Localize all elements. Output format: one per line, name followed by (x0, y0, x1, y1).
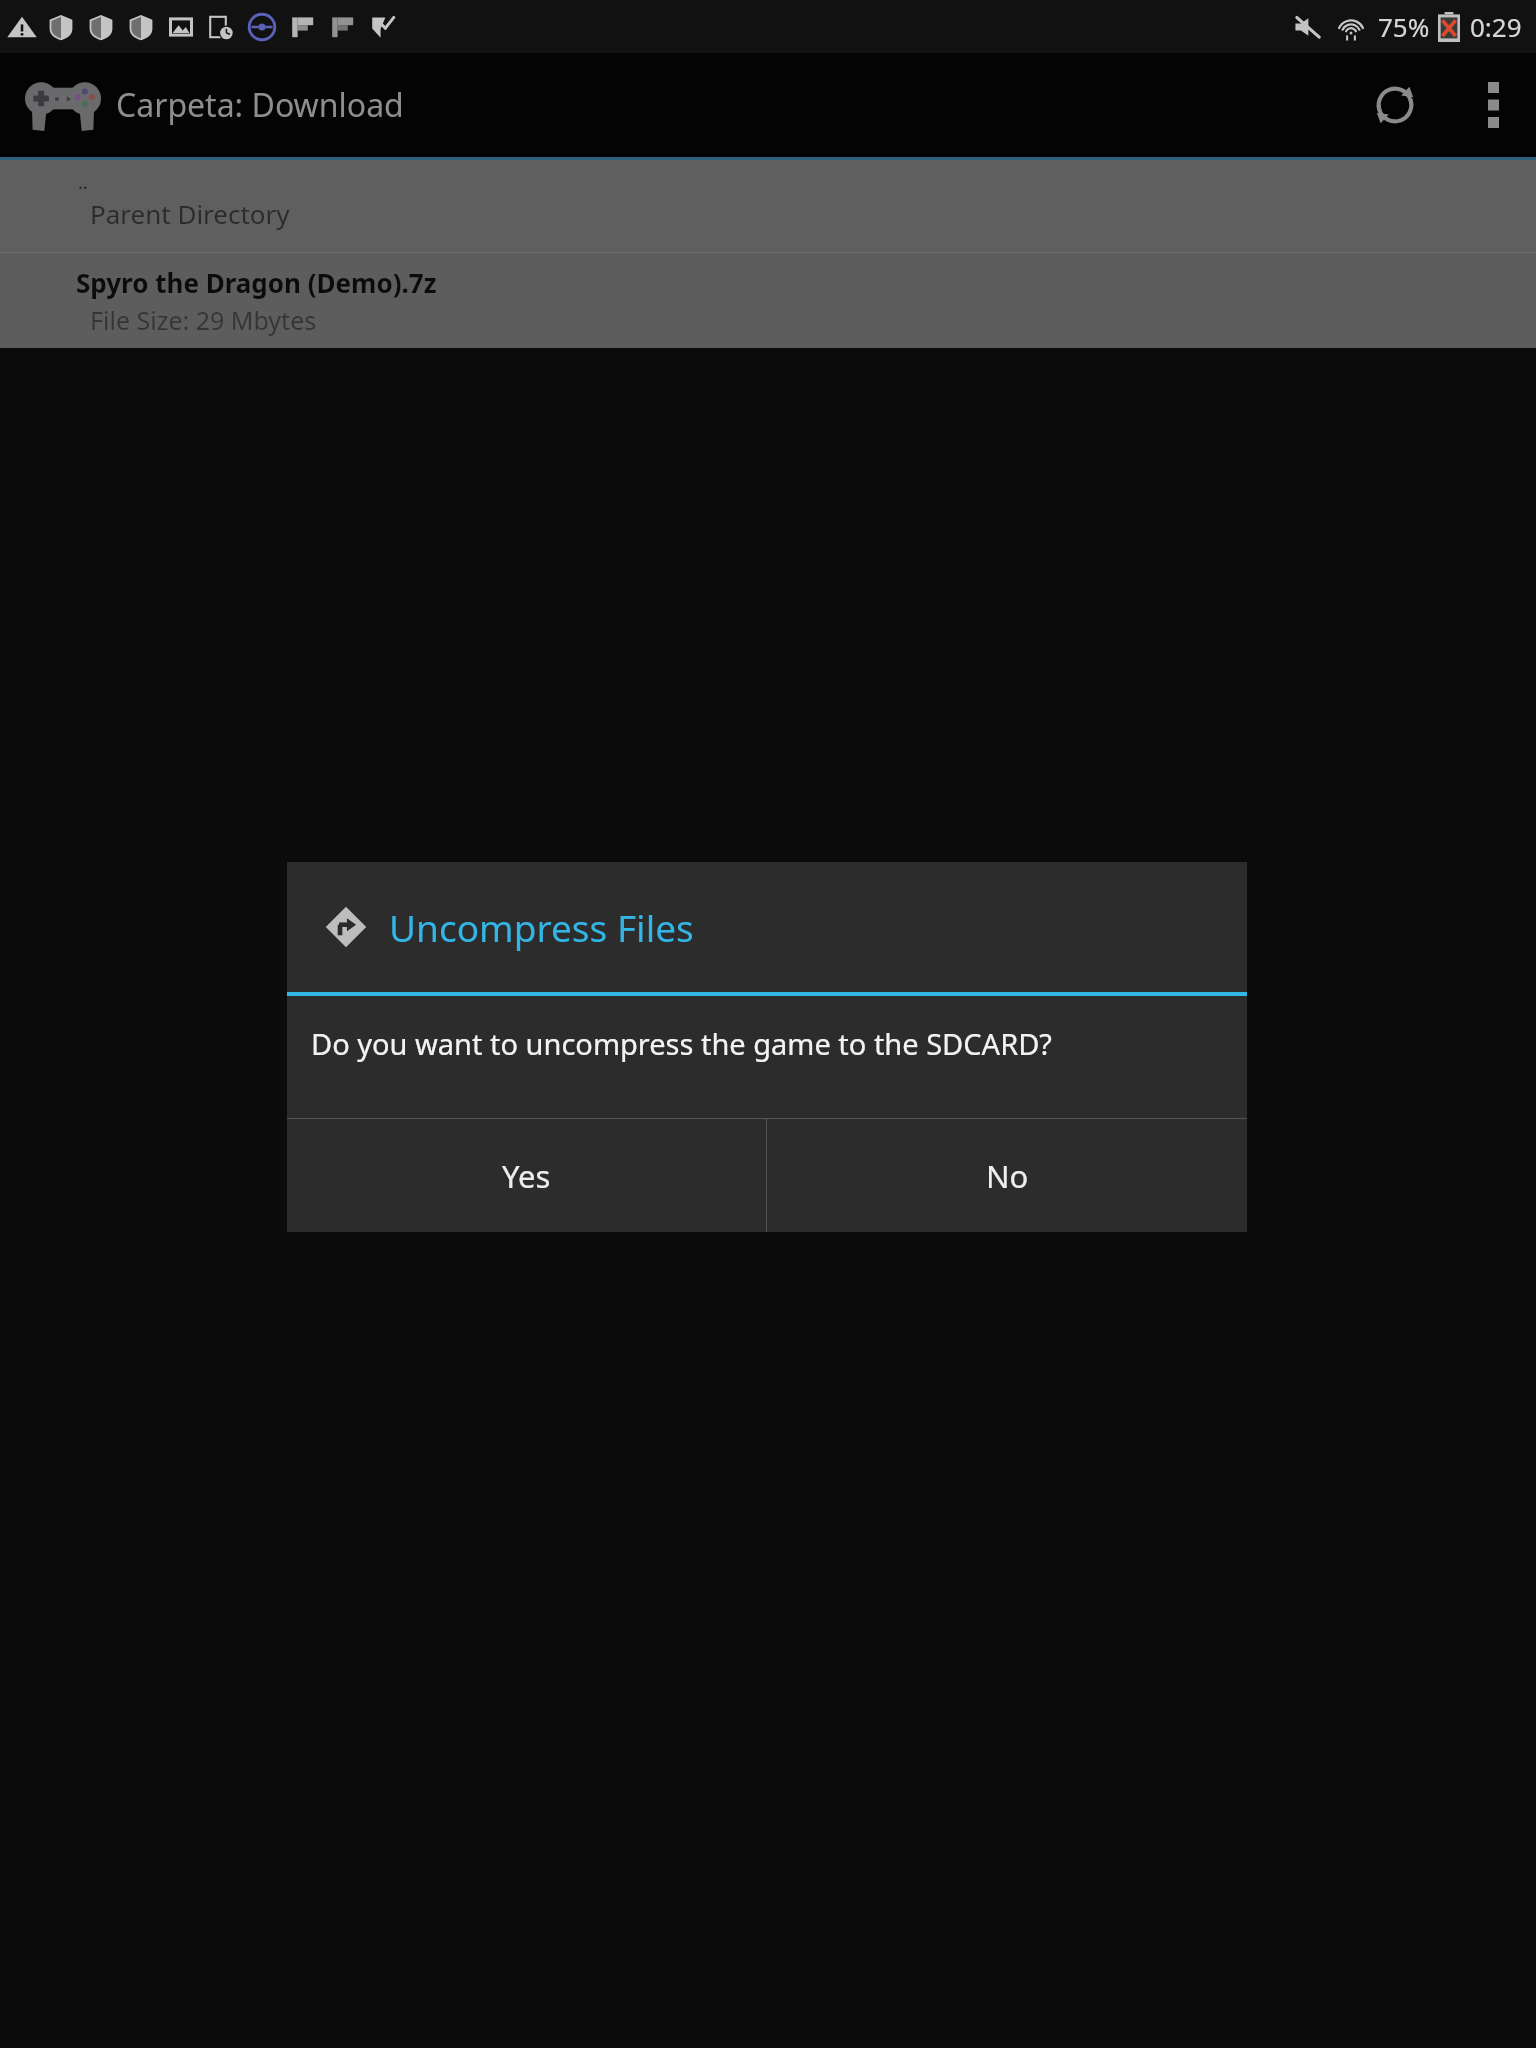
staticText: 0:29 (1470, 9, 1522, 44)
button[interactable]: More options (1450, 53, 1536, 157)
staticText: File Size: 29 Mbytes (90, 303, 317, 337)
button[interactable]: Carpeta: Download (24, 78, 404, 132)
staticText: Parent Directory (90, 196, 290, 231)
staticText: 75% (1378, 9, 1430, 44)
button[interactable]: .. (0, 160, 1536, 252)
staticText: Yes (502, 1155, 551, 1197)
button[interactable]: Refresh (1340, 53, 1450, 157)
staticText: Uncompress Files (389, 902, 694, 952)
staticText: .. (78, 170, 88, 195)
staticText: No (986, 1155, 1029, 1197)
staticText: Do you want to uncompress the game to th… (311, 1024, 1052, 1063)
button[interactable]: Spyro the Dragon (Demo).7z (0, 253, 1536, 348)
button[interactable]: No (767, 1119, 1247, 1232)
staticText: Carpeta: Download (116, 83, 404, 127)
button[interactable]: Yes (287, 1119, 766, 1232)
staticText: Spyro the Dragon (Demo).7z (76, 265, 437, 300)
